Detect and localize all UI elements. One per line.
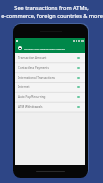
- button[interactable]: Success! Your settings were updated: [15, 43, 85, 53]
- staticText: Success! Your settings were updated: [24, 47, 65, 50]
- staticText: See transactions from ATMs,: [14, 4, 89, 12]
- button[interactable]: Internet: [15, 82, 85, 92]
- staticText: International Transactions: [18, 76, 55, 80]
- staticText: e-commerce, foreign countries & more: [1, 12, 103, 20]
- button[interactable]: ATM Withdrawals: [15, 102, 85, 112]
- button[interactable]: Contactless Payments: [15, 63, 85, 73]
- staticText: Transaction Amount: [18, 56, 47, 60]
- staticText: Auto Pay/Recurring: [18, 95, 46, 99]
- staticText: Contactless Payments: [18, 66, 49, 70]
- button[interactable]: Auto Pay/Recurring: [15, 92, 85, 102]
- staticText: Internet: [18, 85, 30, 89]
- staticText: ATM Withdrawals: [18, 105, 43, 109]
- button[interactable]: International Transactions: [15, 73, 85, 83]
- button[interactable]: Transaction Amount: [15, 53, 85, 63]
